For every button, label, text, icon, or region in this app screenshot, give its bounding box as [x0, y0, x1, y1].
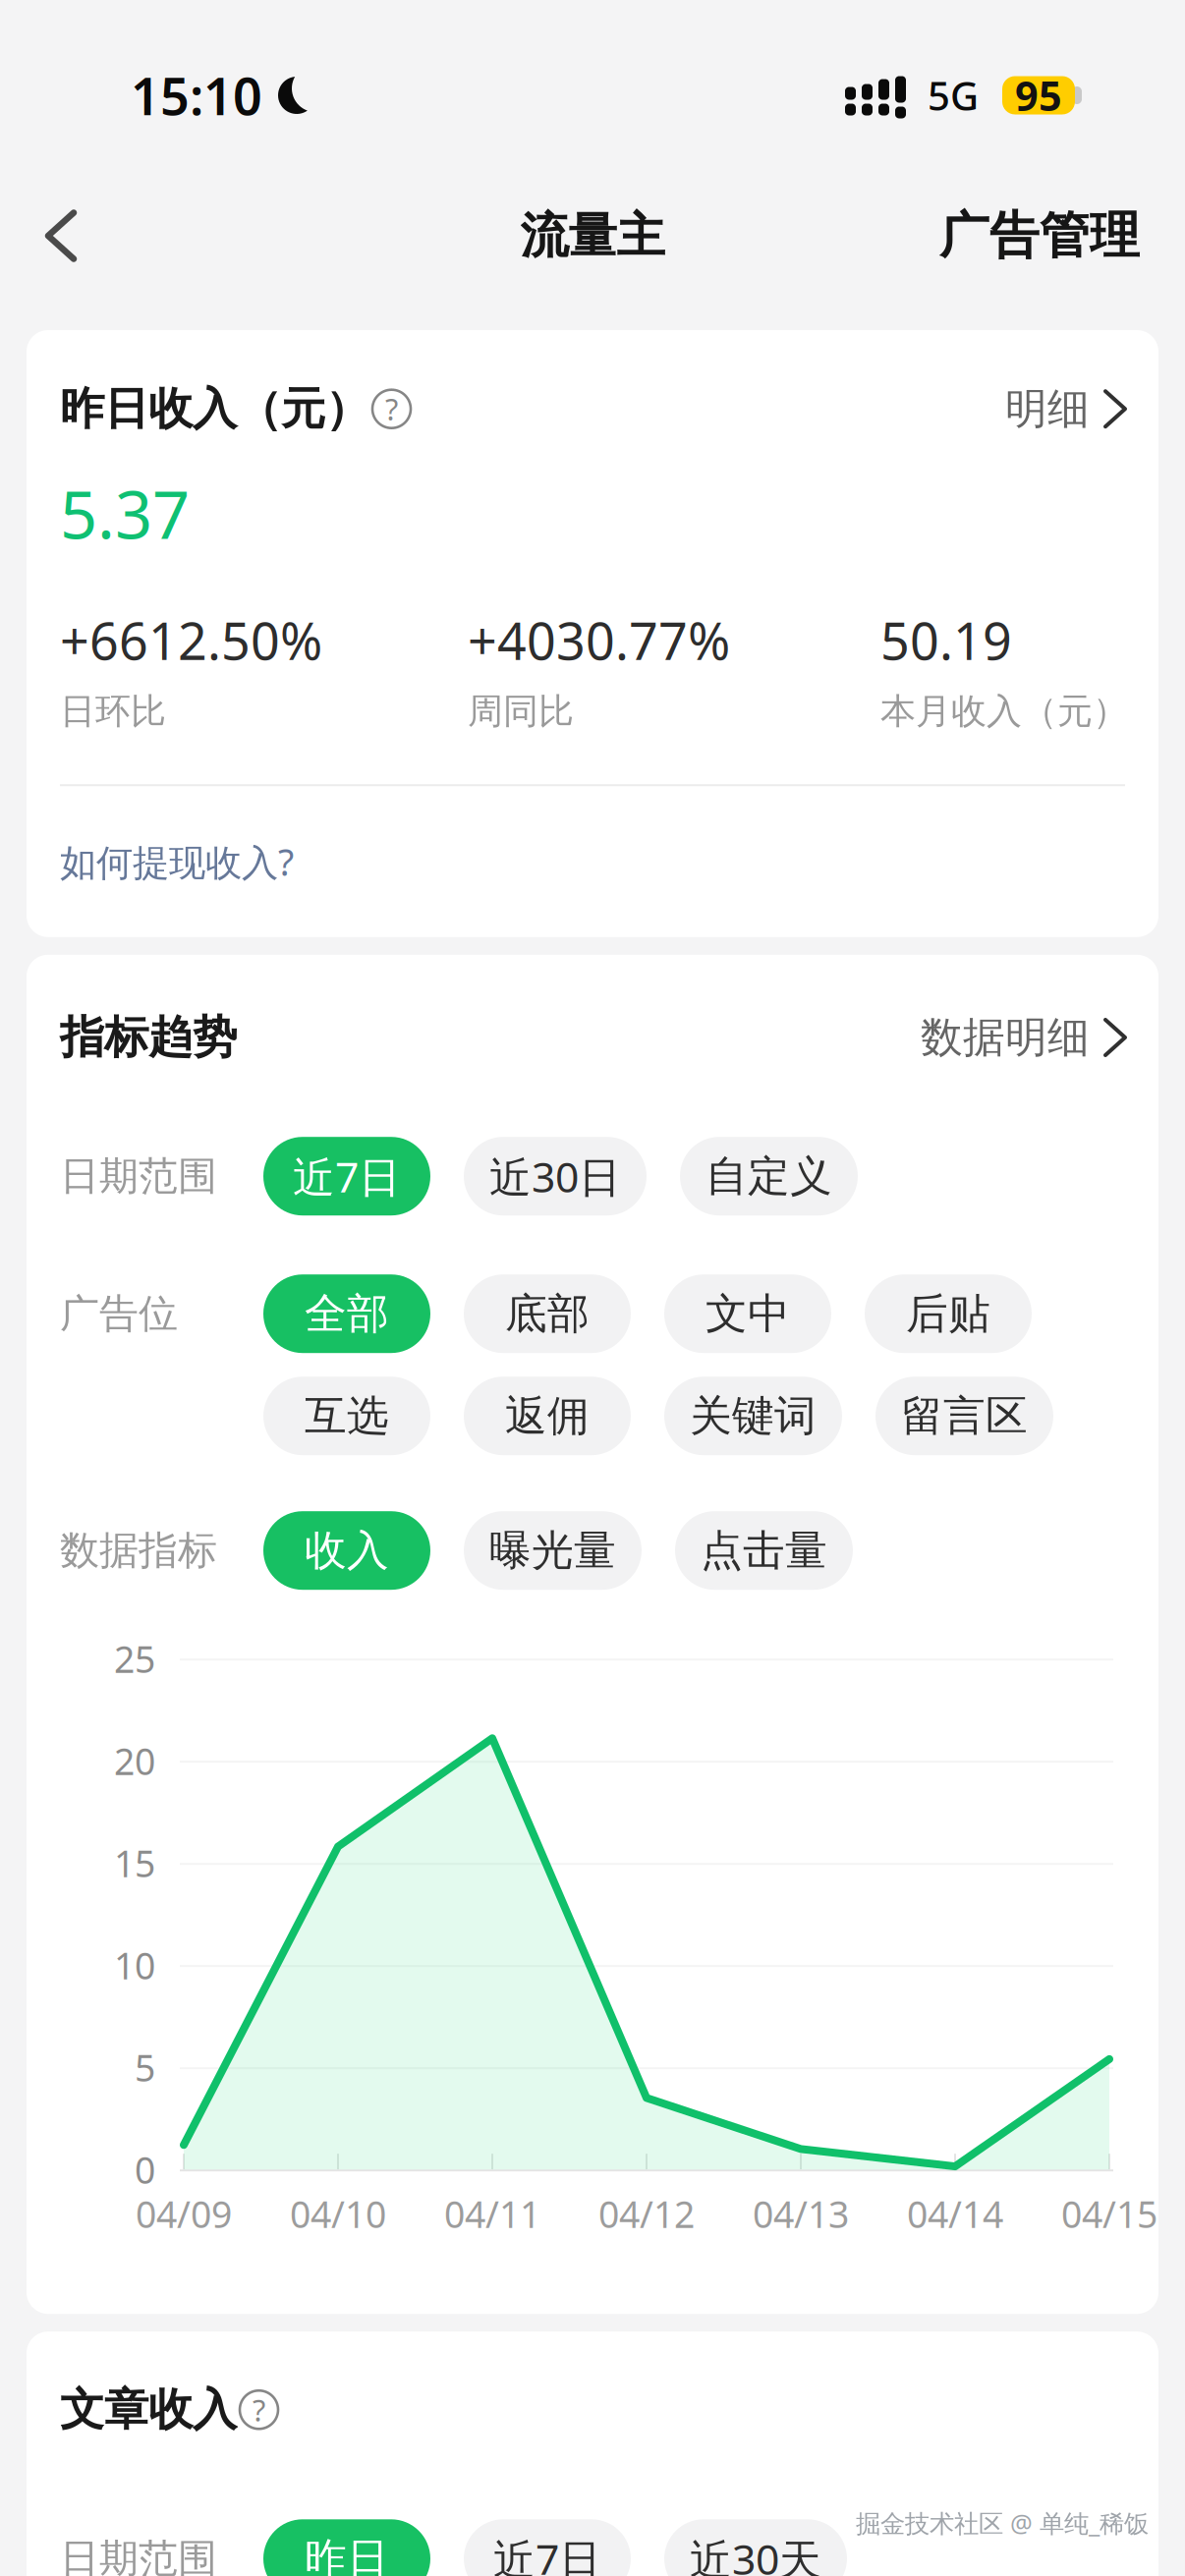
- staticText: 广告位: [60, 1290, 178, 1338]
- button[interactable]: 近30日: [464, 1137, 647, 1215]
- staticText: 95: [1015, 68, 1062, 122]
- staticText: 日期范围: [60, 1152, 217, 1200]
- staticText: ?: [253, 2390, 265, 2430]
- staticText: 04/15: [1061, 2189, 1157, 2238]
- staticText: 收入: [305, 1525, 389, 1576]
- staticText: 后贴: [906, 1288, 990, 1339]
- staticText: 50.19: [880, 606, 1012, 674]
- staticText: 明细: [1005, 383, 1090, 435]
- staticText: 日环比: [60, 690, 166, 733]
- staticText: 自定义: [705, 1150, 832, 1202]
- staticText: 15: [114, 1839, 155, 1887]
- staticText: 5: [135, 2043, 155, 2092]
- staticText: 周同比: [468, 690, 574, 733]
- button[interactable]: 昨日: [263, 2519, 430, 2576]
- staticText: 点击量: [701, 1525, 827, 1576]
- button[interactable]: 点击量: [675, 1511, 853, 1590]
- staticText: 10: [114, 1941, 155, 1989]
- staticText: 25: [114, 1634, 155, 1683]
- button[interactable]: 近7日: [464, 2519, 631, 2576]
- button[interactable]: 曝光量: [464, 1511, 642, 1590]
- staticText: 流量主: [520, 205, 665, 266]
- staticText: 04/10: [290, 2189, 386, 2238]
- button[interactable]: 全部: [263, 1274, 430, 1353]
- staticText: 全部: [305, 1288, 389, 1339]
- staticText: 04/09: [136, 2189, 232, 2238]
- staticText: 04/12: [598, 2189, 695, 2238]
- staticText: 底部: [505, 1288, 590, 1339]
- staticText: 04/13: [753, 2189, 849, 2238]
- button[interactable]: 关键词: [664, 1377, 842, 1455]
- staticText: 近7日: [293, 1148, 401, 1204]
- button[interactable]: 广告管理: [926, 182, 1178, 290]
- staticText: ?: [385, 389, 398, 429]
- staticText: 互选: [305, 1390, 389, 1442]
- staticText: 指标趋势: [60, 1009, 237, 1065]
- staticText: 5.37: [60, 470, 190, 557]
- staticText: 数据明细: [921, 1012, 1090, 1063]
- button[interactable]: 后贴: [865, 1274, 1032, 1353]
- staticText: 日期范围: [60, 2534, 217, 2576]
- staticText: 04/14: [907, 2189, 1003, 2238]
- button[interactable]: 返佣: [464, 1377, 631, 1455]
- staticText: 近30天: [690, 2531, 821, 2576]
- button[interactable]: 返回: [7, 182, 115, 290]
- staticText: 0: [135, 2145, 155, 2194]
- button[interactable]: 文中: [664, 1274, 831, 1353]
- button[interactable]: 如何提现收入?: [60, 827, 294, 896]
- staticText: 04/11: [444, 2189, 540, 2238]
- staticText: 20: [114, 1736, 155, 1785]
- staticText: 曝光量: [489, 1525, 616, 1576]
- staticText: 15:10: [131, 61, 262, 129]
- staticText: 返佣: [505, 1390, 590, 1442]
- button[interactable]: 留言区: [875, 1377, 1053, 1455]
- staticText: 如何提现收入?: [60, 837, 294, 886]
- button[interactable]: 近30天: [664, 2519, 847, 2576]
- staticText: 关键词: [690, 1390, 817, 1442]
- staticText: 广告管理: [939, 204, 1140, 267]
- button[interactable]: 互选: [263, 1377, 430, 1455]
- button[interactable]: 收入: [263, 1511, 430, 1590]
- staticText: 本月收入（元）: [880, 690, 1128, 733]
- staticText: +4030.77%: [468, 606, 730, 674]
- staticText: 数据指标: [60, 1526, 217, 1575]
- staticText: 昨日收入（元）: [60, 381, 369, 437]
- staticText: 掘金技术社区 @ 单纯_稀饭: [856, 2506, 1149, 2539]
- button[interactable]: 底部: [464, 1274, 631, 1353]
- button[interactable]: 近7日: [263, 1137, 430, 1215]
- staticText: +6612.50%: [60, 606, 322, 674]
- button[interactable]: 数据明细: [921, 1004, 1125, 1071]
- button[interactable]: 自定义: [680, 1137, 858, 1215]
- staticText: 文章收入: [60, 2382, 237, 2438]
- staticText: 5G: [928, 69, 979, 121]
- staticText: 昨日: [305, 2533, 389, 2576]
- button[interactable]: 明细: [1005, 375, 1125, 442]
- staticText: 近30日: [489, 1148, 621, 1204]
- staticText: 文中: [705, 1288, 790, 1339]
- staticText: 近7日: [493, 2531, 601, 2576]
- staticText: 留言区: [901, 1390, 1028, 1442]
